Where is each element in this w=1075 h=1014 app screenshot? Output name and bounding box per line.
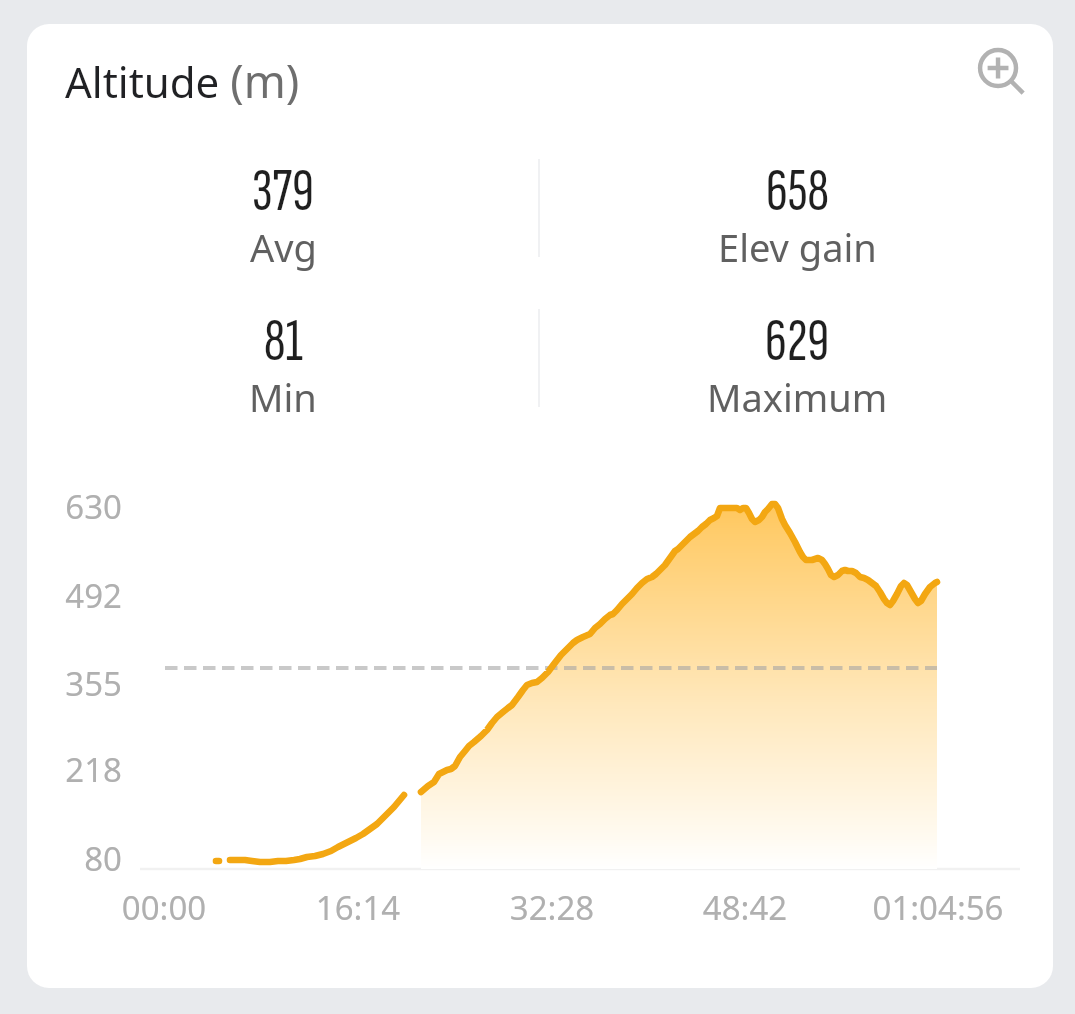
staticText: 81 [264,305,303,378]
button[interactable]: 658 [567,148,1027,274]
button[interactable]: Altitude graph [140,470,1020,880]
staticText: Min [249,371,317,423]
staticText: 01:04:56 [788,885,1053,930]
button[interactable]: Zoom in [965,35,1041,111]
staticText: Avg [250,221,317,273]
button[interactable]: 629 [567,298,1027,424]
staticText: 16:14 [208,885,508,930]
staticText: 80 [27,836,122,881]
staticText: 658 [766,155,829,228]
staticText: 492 [27,573,122,618]
staticText: 630 [27,484,122,529]
button[interactable]: 379 [53,148,513,274]
staticText: 00:00 [27,885,314,930]
staticText: 48:42 [595,885,895,930]
staticText: Elev gain [718,221,877,273]
staticText: 629 [765,305,830,378]
staticText: 32:28 [402,885,702,930]
staticText: Altitude (m) [65,50,300,111]
staticText: 355 [27,661,122,706]
button[interactable]: 81 [53,298,513,424]
staticText: 218 [27,747,122,792]
staticText: Maximum [707,371,888,423]
staticText: 379 [252,155,314,228]
